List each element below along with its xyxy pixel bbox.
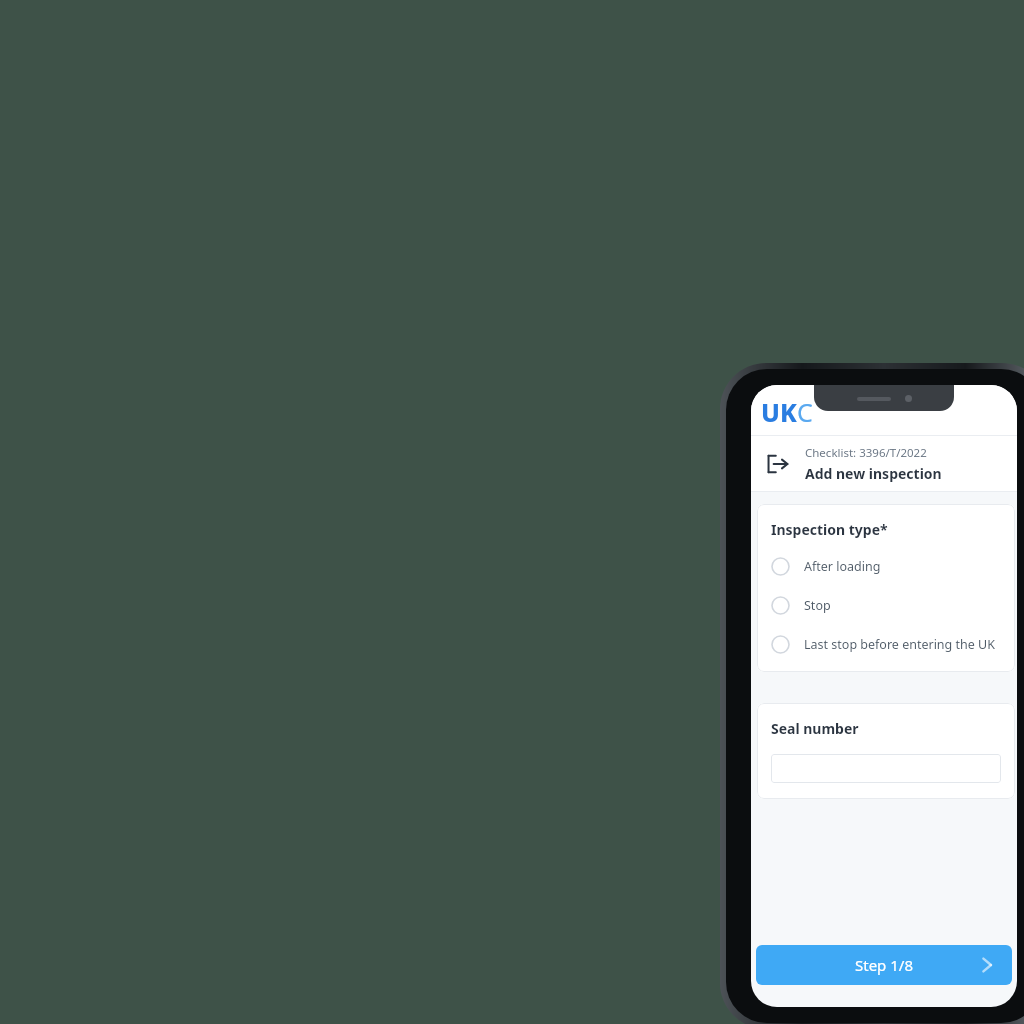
button[interactable]: After loading [771,557,1001,576]
staticText: After loading [804,558,881,575]
staticText: Seal number [771,719,859,738]
staticText: Last stop before entering the UK [804,636,995,653]
button[interactable]: Log out [761,447,795,481]
button[interactable]: Stop [771,596,1001,615]
staticText: Inspection type* [771,520,888,539]
staticText: C [797,395,813,429]
button[interactable]: Last stop before entering the UK [771,635,1001,654]
staticText: UK [761,395,797,429]
button[interactable] [771,754,1001,783]
staticText: Checklist: 3396/T/2022 [805,445,927,461]
button[interactable]: Step 1/8 [756,945,1012,985]
staticText: Add new inspection [805,464,942,483]
staticText: Stop [804,597,831,614]
staticText: Step 1/8 [855,955,913,975]
